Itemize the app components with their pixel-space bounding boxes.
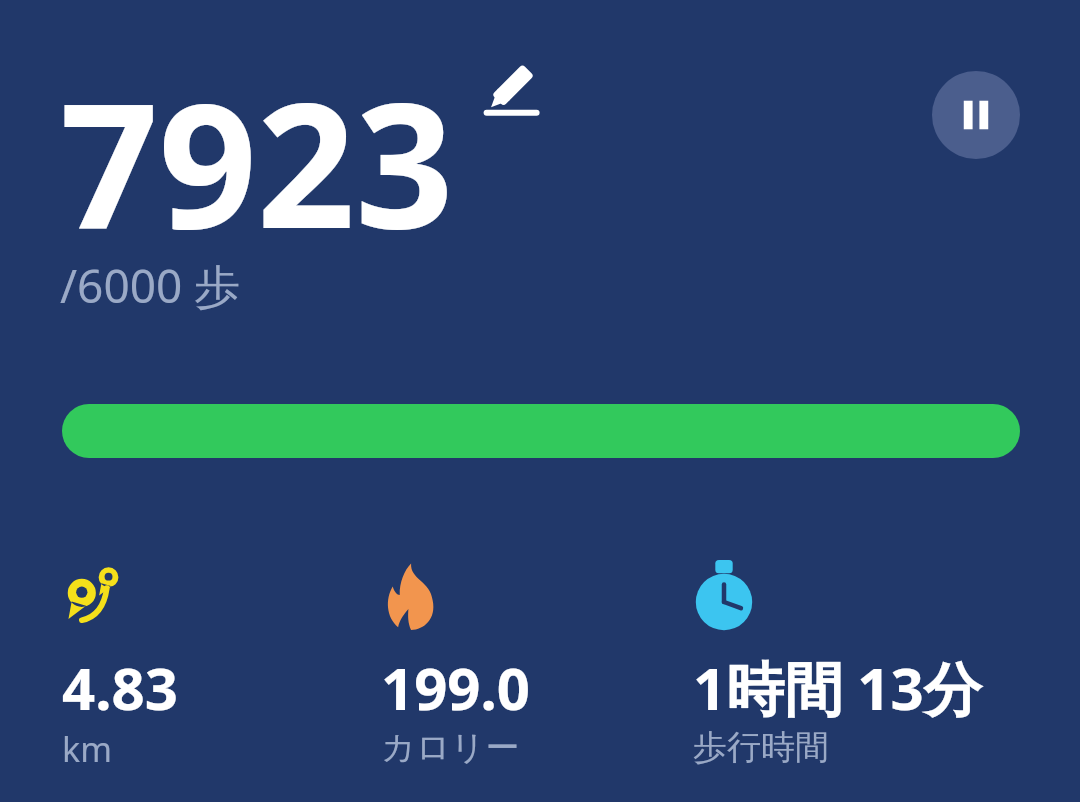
staticText: 歩行時間 xyxy=(693,726,829,769)
button[interactable]: 7923 xyxy=(60,44,454,278)
button[interactable]: Pause xyxy=(932,71,1020,159)
other: Distance xyxy=(62,560,128,630)
staticText: 4.83 xyxy=(62,648,178,727)
staticText: /6000 歩 xyxy=(60,254,241,317)
button[interactable]: 4.83 xyxy=(62,648,178,727)
staticText: 199.0 xyxy=(381,648,531,727)
button[interactable]: 1時間 13分 xyxy=(693,648,982,727)
button[interactable]: 199.0 xyxy=(381,648,531,727)
other: Calories xyxy=(383,560,437,630)
staticText: カロリー xyxy=(381,726,520,769)
button[interactable]: Edit step goal xyxy=(478,55,548,127)
staticText: 1時間 13分 xyxy=(693,648,982,727)
staticText: 7923 xyxy=(60,44,454,278)
button[interactable] xyxy=(62,404,1020,458)
other: Walking time xyxy=(694,560,754,630)
staticText: km xyxy=(62,726,112,772)
